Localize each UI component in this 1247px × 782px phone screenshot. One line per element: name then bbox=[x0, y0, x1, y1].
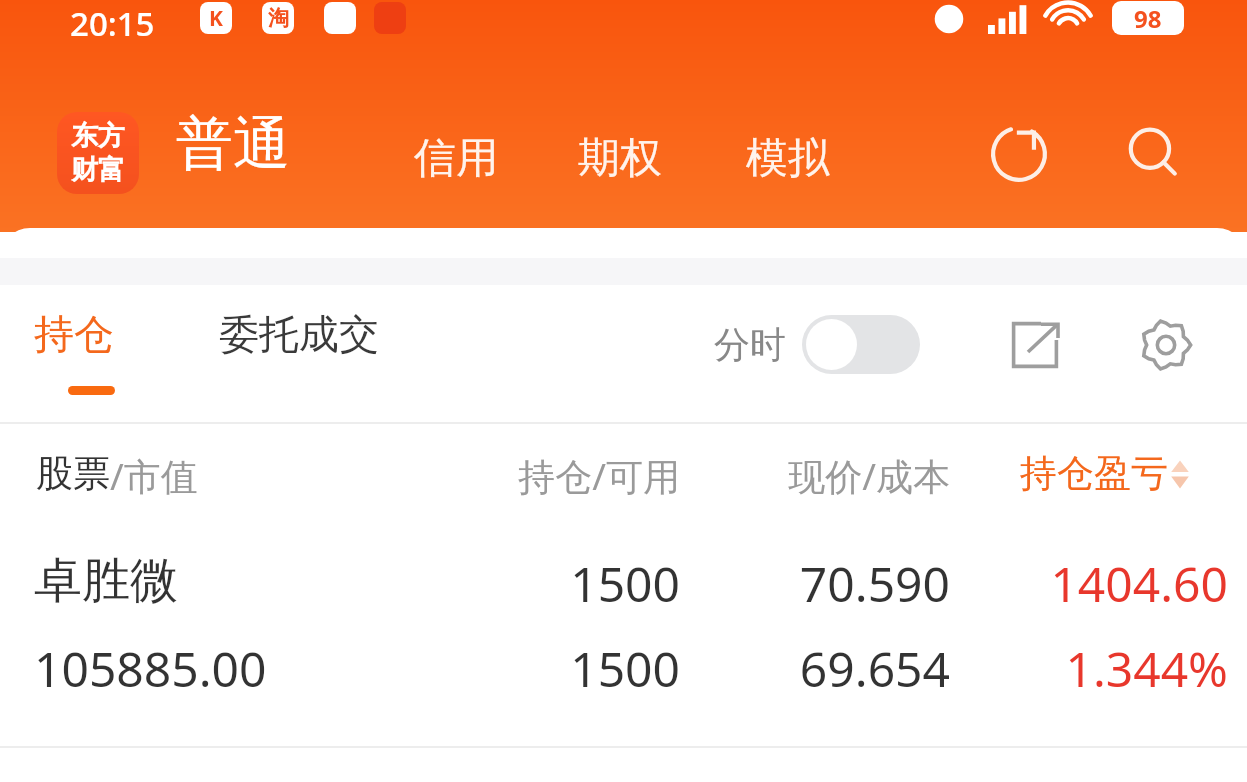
button[interactable]: Settings bbox=[1124, 303, 1208, 387]
button[interactable]: 分时 bbox=[714, 315, 920, 374]
staticText: 70.590 bbox=[680, 551, 950, 616]
staticText: 期权 bbox=[578, 132, 662, 185]
staticText: 现价/成本 bbox=[700, 450, 950, 501]
staticText: 卓胜微 bbox=[34, 551, 178, 611]
staticText: 1500 bbox=[380, 636, 680, 701]
button[interactable]: Open in new bbox=[993, 303, 1077, 387]
button[interactable]: 持仓 bbox=[34, 309, 114, 359]
staticText: K bbox=[209, 4, 223, 33]
button[interactable]: 期权 bbox=[578, 132, 662, 185]
button[interactable]: 委托成交 bbox=[219, 309, 379, 359]
button[interactable]: 东方财富 bbox=[57, 112, 139, 194]
staticText: 持仓盈亏 bbox=[1020, 450, 1168, 497]
staticText: 105885.00 bbox=[34, 636, 267, 701]
staticText: 股票 bbox=[36, 450, 110, 497]
staticText: 淘 bbox=[268, 5, 289, 31]
button[interactable]: 持仓盈亏 bbox=[1020, 450, 1190, 497]
staticText: 信用 bbox=[414, 132, 498, 185]
staticText: 委托成交 bbox=[219, 309, 379, 359]
button[interactable]: Refresh bbox=[975, 110, 1063, 198]
staticText: 模拟 bbox=[746, 132, 830, 185]
staticText: 持仓/可用 bbox=[380, 450, 680, 501]
staticText: 分时 bbox=[714, 322, 786, 367]
button[interactable]: 信用 bbox=[414, 132, 498, 185]
staticText: 1.344% bbox=[930, 636, 1228, 701]
staticText: 东方 bbox=[71, 119, 125, 153]
staticText: 财富 bbox=[71, 153, 125, 187]
staticText: 持仓 bbox=[34, 309, 114, 359]
staticText: 98 bbox=[1134, 2, 1162, 35]
button[interactable]: 卓胜微 bbox=[0, 529, 1247, 748]
staticText: 69.654 bbox=[680, 636, 950, 701]
staticText: 普通 bbox=[176, 108, 290, 180]
staticText: 1404.60 bbox=[930, 551, 1228, 616]
staticText: 1500 bbox=[380, 551, 680, 616]
button[interactable]: 模拟 bbox=[746, 132, 830, 185]
button[interactable]: Search bbox=[1110, 110, 1198, 198]
staticText: 20:15 bbox=[70, 1, 155, 39]
staticText: /市值 bbox=[110, 450, 198, 501]
button[interactable]: 普通 bbox=[176, 108, 290, 180]
